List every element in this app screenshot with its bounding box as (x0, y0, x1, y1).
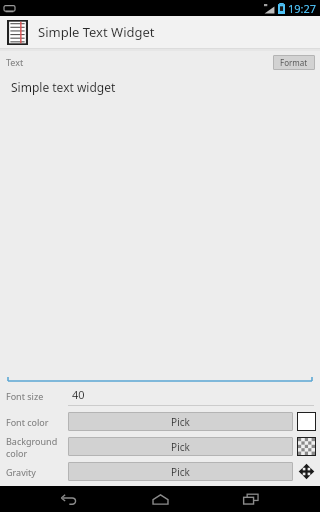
button[interactable]: Font color swatch (297, 412, 316, 431)
button[interactable]: Pick (68, 462, 293, 481)
button[interactable]: Recent apps (229, 486, 273, 512)
staticText: Text (6, 56, 24, 68)
button[interactable]: Simple text widget (0, 73, 320, 377)
staticText: Font size (6, 390, 68, 402)
staticText: 19:27 (288, 1, 317, 16)
staticText: Simple text widget (11, 79, 116, 95)
button[interactable]: Home (138, 486, 182, 512)
button[interactable]: Background color swatch (297, 437, 316, 456)
staticText: Pick (171, 415, 190, 429)
staticText: Pick (171, 465, 190, 479)
staticText: Pick (171, 440, 190, 454)
button[interactable]: Format (273, 55, 315, 70)
staticText: Format (280, 57, 308, 68)
button[interactable]: Pick (68, 437, 293, 456)
staticText: 40 (72, 387, 85, 402)
button[interactable]: Font size (0, 383, 320, 409)
staticText: Font color (6, 416, 68, 428)
button[interactable]: Pick (68, 412, 293, 431)
button[interactable]: Gravity (297, 462, 316, 481)
button[interactable]: Back (47, 486, 91, 512)
staticText: Background color (6, 435, 68, 459)
staticText: Simple Text Widget (38, 23, 155, 41)
staticText: Gravity (6, 466, 68, 478)
